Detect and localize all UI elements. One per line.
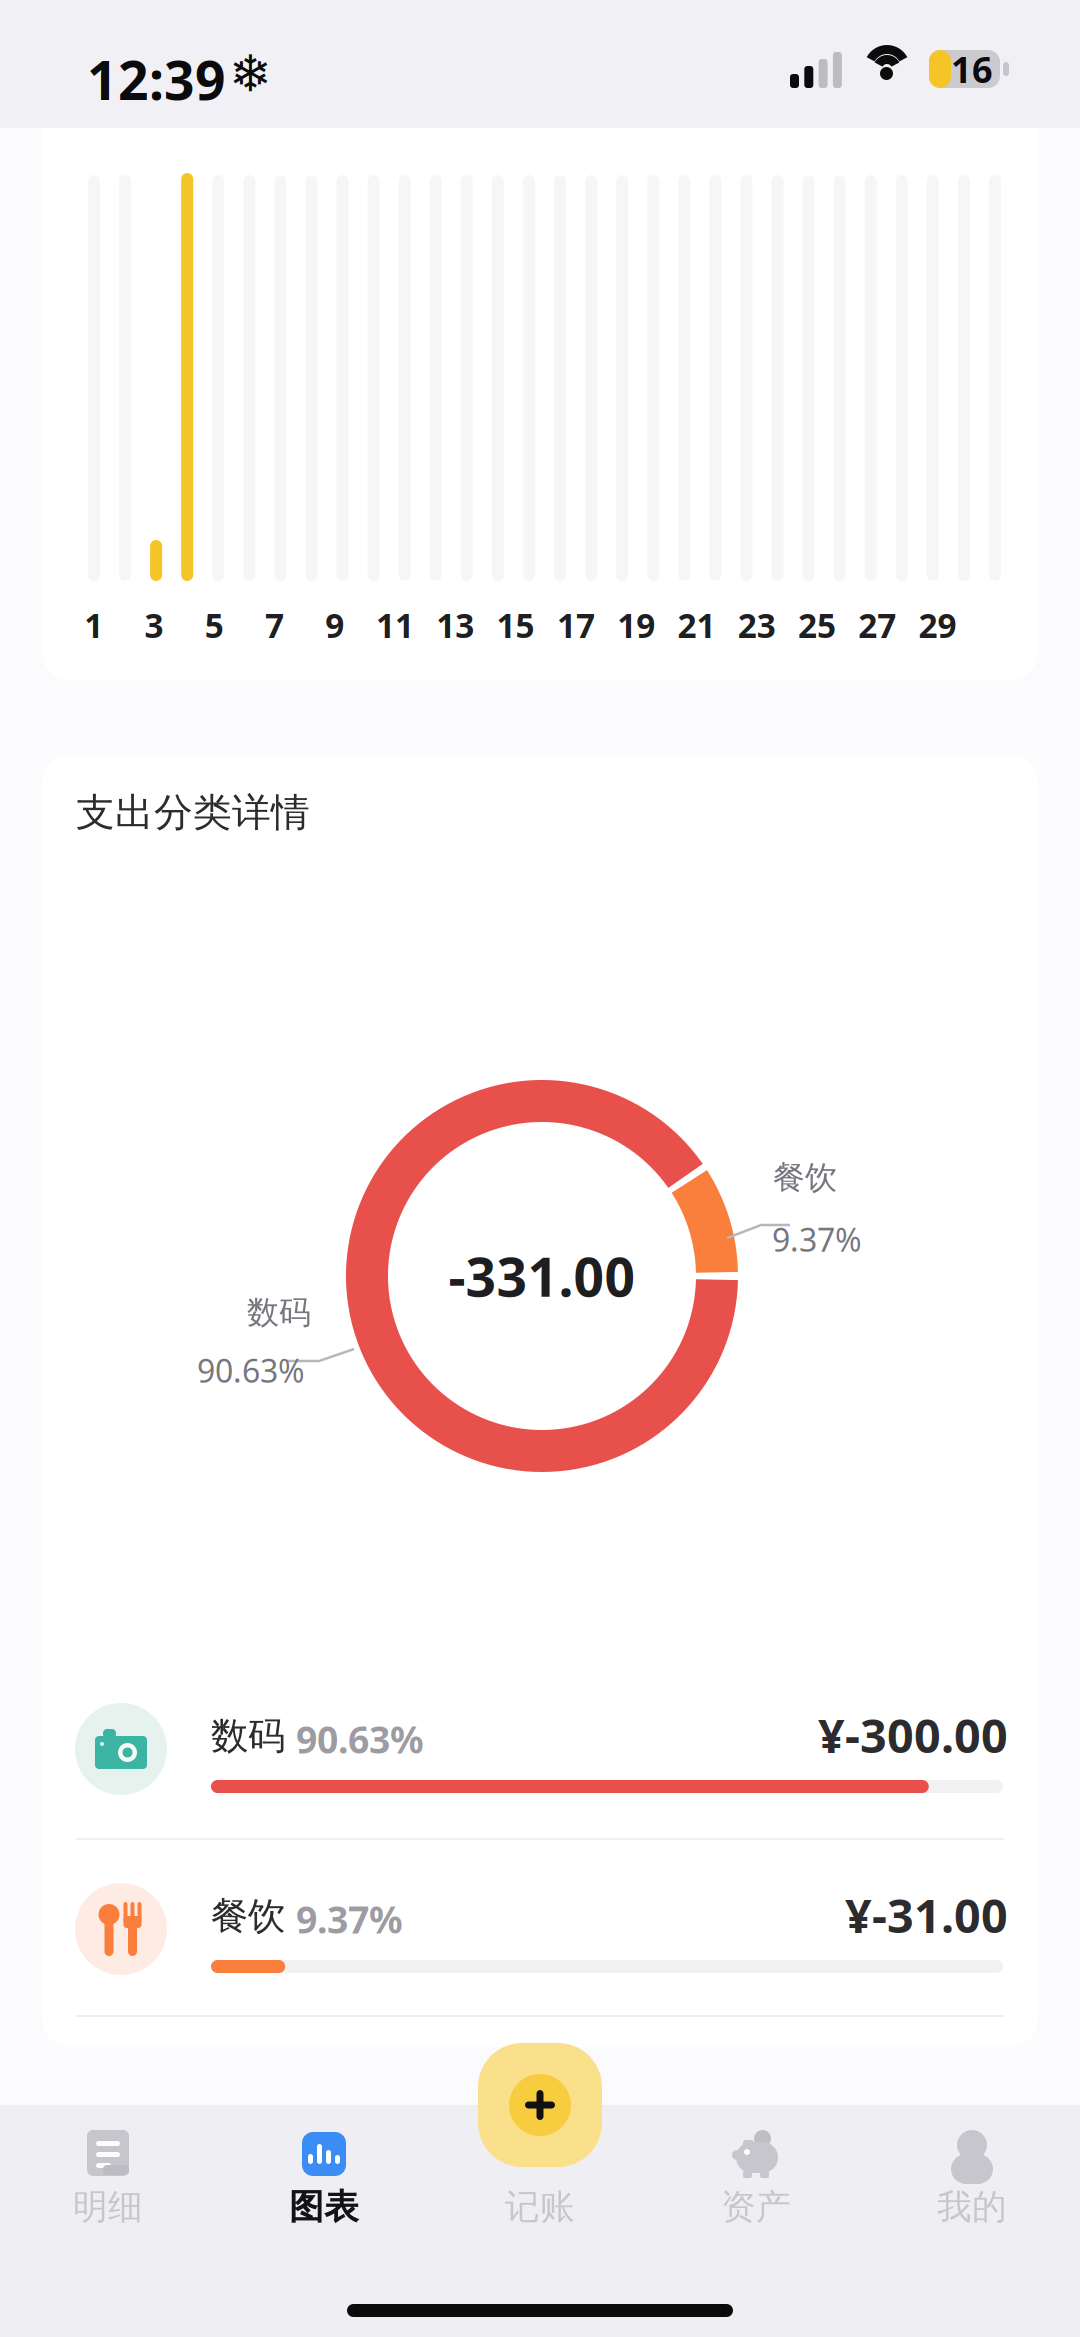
staticText: 9.37% [296, 1894, 403, 1944]
staticText: 12:39 [87, 44, 226, 115]
staticText: 16 [951, 45, 993, 93]
staticText: 17 [557, 603, 595, 647]
staticText: ❄ [229, 45, 271, 102]
staticText: -331.00 [448, 1241, 635, 1311]
staticText: 27 [858, 603, 896, 647]
staticText: 90.63% [197, 1349, 305, 1391]
button[interactable]: 记账 [478, 2043, 602, 2167]
staticText: 我的 [937, 2186, 1007, 2228]
staticText: 餐饮 [211, 1893, 285, 1939]
staticText: 21 [677, 603, 715, 647]
staticText: 9.37% [772, 1218, 862, 1260]
staticText: 1 [84, 603, 103, 647]
staticText: 15 [497, 603, 535, 647]
staticText: 23 [738, 603, 776, 647]
button[interactable]: 记账 [432, 2105, 648, 2265]
staticText: 资产 [721, 2186, 791, 2228]
button[interactable]: 图表 [216, 2105, 432, 2265]
staticText: 明细 [73, 2186, 143, 2228]
staticText: 9 [325, 603, 344, 647]
staticText: 餐饮 [773, 1158, 837, 1197]
staticText: 支出分类详情 [76, 789, 310, 836]
staticText: ¥-31.00 [845, 1884, 1008, 1946]
staticText: 图表 [289, 2186, 359, 2228]
staticText: 90.63% [296, 1714, 424, 1764]
staticText: ¥-300.00 [818, 1704, 1008, 1766]
staticText: 29 [919, 603, 957, 647]
button[interactable]: 餐饮 [76, 1860, 1004, 2018]
button[interactable]: 数码 [76, 1680, 1004, 1838]
button[interactable]: 资产 [648, 2105, 864, 2265]
staticText: 数码 [211, 1713, 285, 1759]
button[interactable]: 我的 [864, 2105, 1080, 2265]
staticText: 5 [205, 603, 224, 647]
staticText: 3 [144, 603, 163, 647]
staticText: 13 [436, 603, 474, 647]
staticText: 19 [617, 603, 655, 647]
button[interactable]: 明细 [0, 2105, 216, 2265]
staticText: 7 [265, 603, 284, 647]
staticText: 记账 [505, 2186, 575, 2228]
staticText: 25 [798, 603, 836, 647]
staticText: 11 [376, 603, 414, 647]
staticText: 数码 [247, 1293, 311, 1332]
